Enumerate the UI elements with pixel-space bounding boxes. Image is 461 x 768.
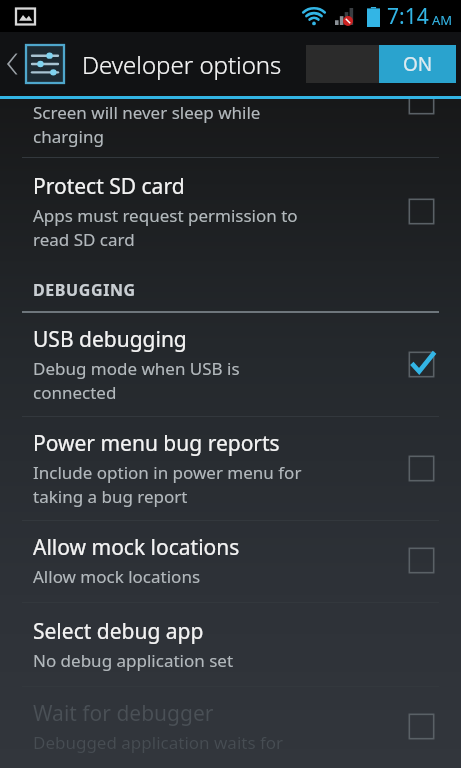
staticText: No debug application set [33, 649, 234, 672]
staticText: 7:14 [387, 2, 429, 31]
staticText: Select debug app [33, 617, 204, 646]
button[interactable]: Allow mock locations [0, 521, 461, 602]
button[interactable]: USB debugging [0, 313, 461, 416]
staticText: USB debugging [33, 325, 187, 354]
button[interactable]: Wait for debugger [0, 687, 461, 766]
staticText: Allow mock locations [33, 565, 201, 588]
staticText: Power menu bug reports [33, 429, 280, 458]
staticText: Allow mock locations [33, 533, 240, 562]
staticText: Developer options [82, 48, 282, 81]
button[interactable]: Power menu bug reports [0, 417, 461, 520]
staticText: Include option in power menu for taking … [33, 461, 302, 508]
staticText: Screen will never sleep while charging [33, 101, 261, 148]
button[interactable]: Screen will never sleep while charging [0, 99, 461, 157]
staticText: ON [403, 51, 433, 77]
button[interactable]: Navigate up [0, 45, 68, 83]
staticText: Wait for debugger [33, 699, 214, 728]
staticText: DEBUGGING [33, 279, 136, 301]
staticText: Debugged application waits for [33, 731, 284, 754]
staticText: Apps must request permission to read SD … [33, 204, 298, 251]
button[interactable]: Developer options master switch, On [304, 39, 458, 89]
staticText: Protect SD card [33, 172, 185, 201]
staticText: Debug mode when USB is connected [33, 357, 240, 404]
button[interactable]: Select debug app [0, 603, 461, 686]
button[interactable]: Protect SD card [0, 158, 461, 265]
staticText: AM [432, 11, 453, 29]
